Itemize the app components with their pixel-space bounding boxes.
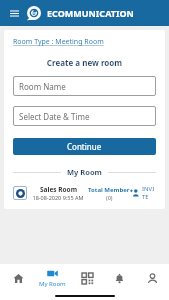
staticText: Room Name xyxy=(19,81,66,92)
button[interactable]: Continue xyxy=(13,138,156,155)
staticText: My Room xyxy=(39,280,66,288)
staticText: Continue xyxy=(67,141,102,152)
staticText: Total Member xyxy=(88,186,130,194)
button[interactable]: Room xyxy=(13,185,156,201)
button[interactable]: Profile xyxy=(137,264,167,292)
button[interactable]: Home xyxy=(3,264,33,292)
button[interactable]: Notifications xyxy=(104,264,134,292)
staticText: My Room xyxy=(67,167,102,177)
staticText: Create a new room xyxy=(13,57,156,68)
button[interactable]: Room Type : Meeting Room xyxy=(13,37,104,47)
staticText: ECOMMUNICATION xyxy=(47,7,134,19)
staticText: Select Date & Time xyxy=(19,111,90,122)
button[interactable]: My Room xyxy=(35,264,69,292)
button[interactable]: Select Date & Time xyxy=(13,106,156,126)
staticText: (0) xyxy=(106,194,113,201)
other: Room xyxy=(13,186,27,200)
staticText: 18-08-2020 9:55 AM xyxy=(32,194,84,201)
button[interactable]: Menu xyxy=(7,6,21,20)
staticText: INVITE xyxy=(142,185,156,201)
button[interactable]: Room Name xyxy=(13,76,156,96)
staticText: Sales Room xyxy=(40,185,77,194)
button[interactable]: Scan QR code xyxy=(72,264,102,292)
button[interactable]: INVITE xyxy=(130,185,156,201)
